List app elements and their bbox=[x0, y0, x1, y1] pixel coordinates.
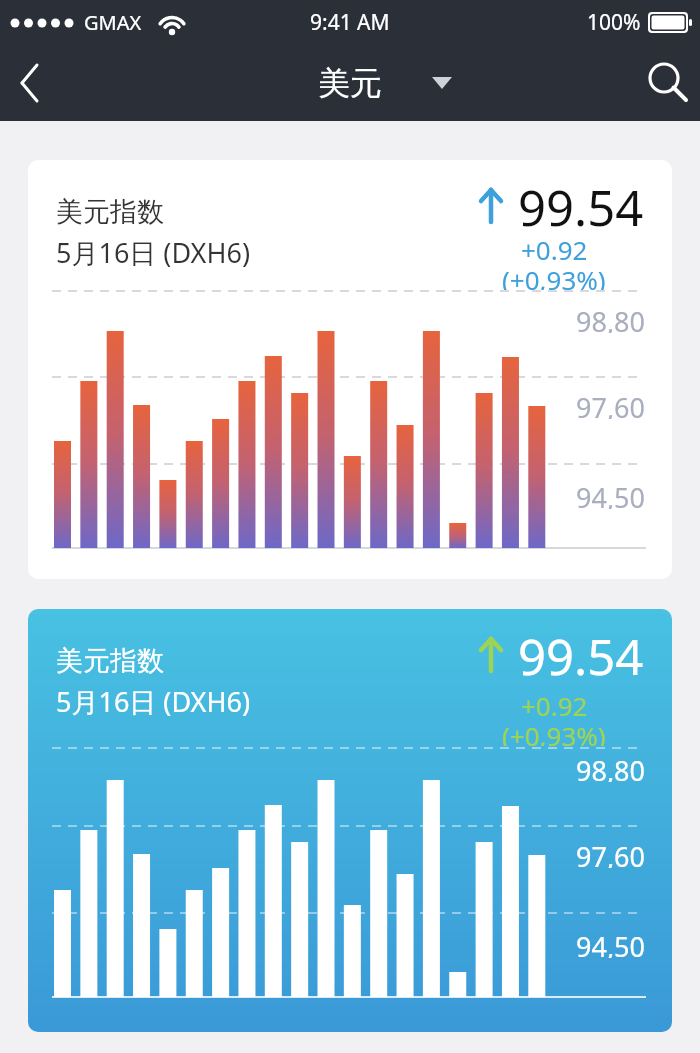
staticText: 5月16日 (DXH6) bbox=[56, 683, 250, 720]
button[interactable]: 美元 bbox=[318, 63, 382, 103]
staticText: 99.54 bbox=[518, 623, 644, 679]
staticText: 5月16日 (DXH6) bbox=[56, 234, 250, 271]
staticText: +0.92 bbox=[521, 688, 588, 716]
staticText: 98,80 bbox=[576, 303, 646, 333]
button[interactable]: 美元指数 bbox=[28, 160, 672, 579]
staticText: 94,50 bbox=[576, 479, 646, 509]
button[interactable] bbox=[0, 44, 60, 121]
button[interactable] bbox=[636, 44, 700, 121]
staticText: +0.92 bbox=[521, 232, 588, 260]
staticText: 99.54 bbox=[518, 174, 644, 230]
staticText: 98,80 bbox=[576, 752, 646, 782]
staticText: GMAX bbox=[84, 9, 142, 36]
staticText: 100% bbox=[587, 8, 641, 37]
staticText: 美元指数 bbox=[56, 644, 164, 678]
staticText: (+0,93%) bbox=[502, 262, 606, 290]
staticText: 9:41 AM bbox=[310, 8, 390, 37]
staticText: 94,50 bbox=[576, 928, 646, 958]
staticText: 97,60 bbox=[576, 389, 646, 419]
staticText: 97,60 bbox=[576, 838, 646, 868]
staticText: (+0,93%) bbox=[502, 718, 606, 746]
button[interactable]: 美元指数 bbox=[28, 609, 672, 1032]
staticText: 美元指数 bbox=[56, 195, 164, 229]
staticText: 美元 bbox=[318, 63, 382, 103]
